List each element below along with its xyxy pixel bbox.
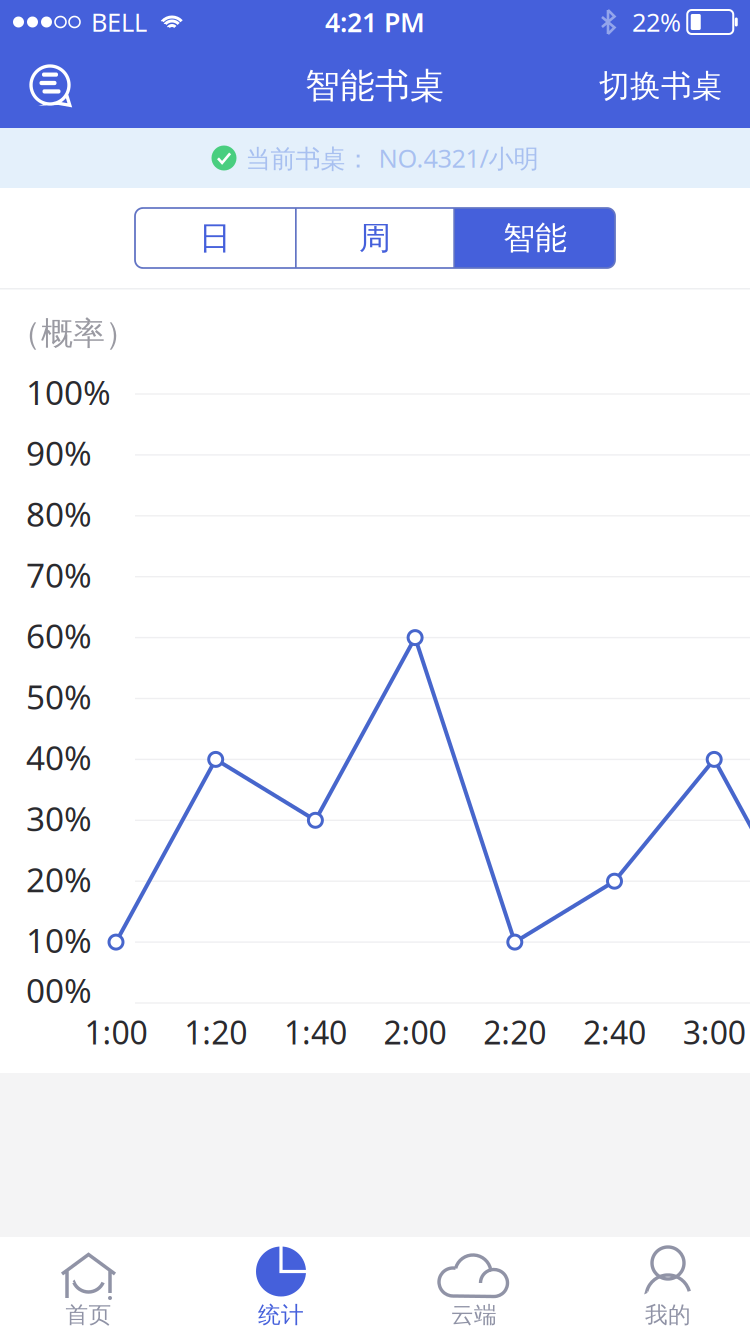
staticText: 1:00: [84, 1011, 147, 1053]
staticText: 60%: [26, 613, 92, 658]
staticText: 10%: [26, 918, 92, 962]
staticText: 1:20: [184, 1011, 247, 1053]
staticText: 我的: [645, 1301, 691, 1329]
staticText: 云端: [451, 1301, 497, 1329]
staticText: 90%: [26, 431, 92, 475]
staticText: 2:00: [384, 1011, 447, 1053]
staticText: 日: [199, 218, 231, 258]
staticText: 70%: [26, 553, 92, 597]
staticText: 50%: [26, 674, 92, 719]
staticText: 4:21 PM: [325, 4, 425, 40]
staticText: 3:00: [683, 1011, 746, 1053]
button[interactable]: 消息: [0, 44, 102, 128]
button[interactable]: 统计: [184, 1237, 377, 1334]
button[interactable]: 智能: [455, 208, 615, 268]
staticText: 统计: [258, 1301, 304, 1329]
button[interactable]: 我的: [571, 1237, 750, 1334]
button[interactable]: 周: [295, 208, 455, 268]
staticText: （概率）: [9, 314, 137, 353]
staticText: 30%: [26, 796, 92, 840]
staticText: 100%: [26, 370, 111, 414]
staticText: 20%: [26, 857, 92, 901]
button[interactable]: 云端: [377, 1237, 570, 1334]
staticText: 周: [359, 218, 391, 258]
staticText: 智能书桌: [305, 65, 445, 107]
button[interactable]: 首页: [0, 1237, 185, 1334]
staticText: 2:40: [583, 1011, 646, 1053]
button[interactable]: 切换书桌: [572, 44, 750, 128]
staticText: 40%: [26, 735, 92, 780]
staticText: 1:40: [284, 1011, 347, 1053]
button[interactable]: 日: [135, 208, 295, 268]
staticText: 首页: [65, 1301, 111, 1329]
staticText: 当前书桌： NO.4321/小明: [245, 141, 538, 175]
staticText: 智能: [503, 218, 567, 258]
staticText: 80%: [26, 492, 92, 536]
staticText: 切换书桌: [599, 67, 723, 105]
staticText: 22%: [632, 5, 681, 39]
staticText: 00%: [26, 968, 92, 1012]
staticText: BELL: [91, 5, 147, 39]
staticText: 2:20: [483, 1011, 546, 1053]
